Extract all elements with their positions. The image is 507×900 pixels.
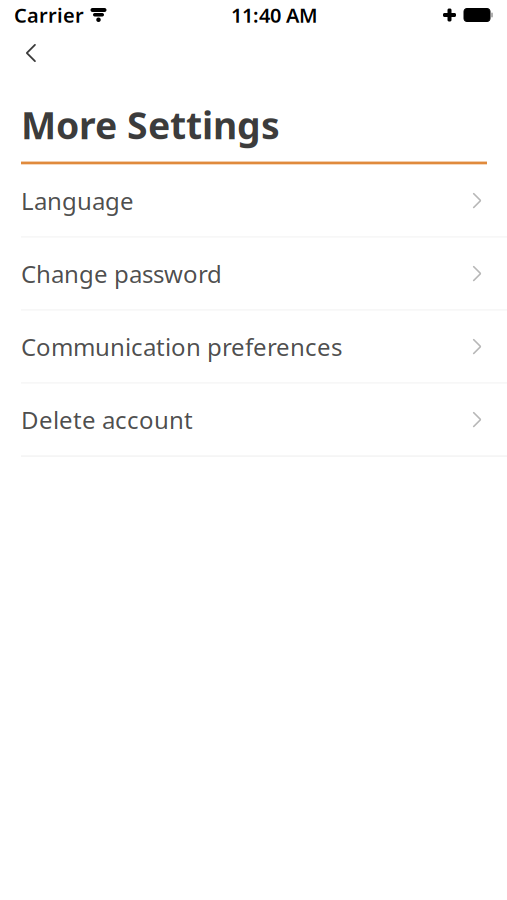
button[interactable]: Language: [0, 165, 507, 237]
button[interactable]: Communication preferences: [0, 311, 507, 383]
staticText: Delete account: [21, 404, 193, 435]
staticText: Change password: [21, 258, 222, 289]
button[interactable]: Back: [8, 32, 54, 74]
button[interactable]: Delete account: [0, 384, 507, 456]
staticText: 11:40 AM: [231, 2, 318, 28]
staticText: Carrier: [14, 2, 84, 28]
staticText: Language: [21, 185, 134, 216]
staticText: More Settings: [21, 100, 280, 150]
button[interactable]: Change password: [0, 238, 507, 310]
staticText: Communication preferences: [21, 331, 342, 362]
